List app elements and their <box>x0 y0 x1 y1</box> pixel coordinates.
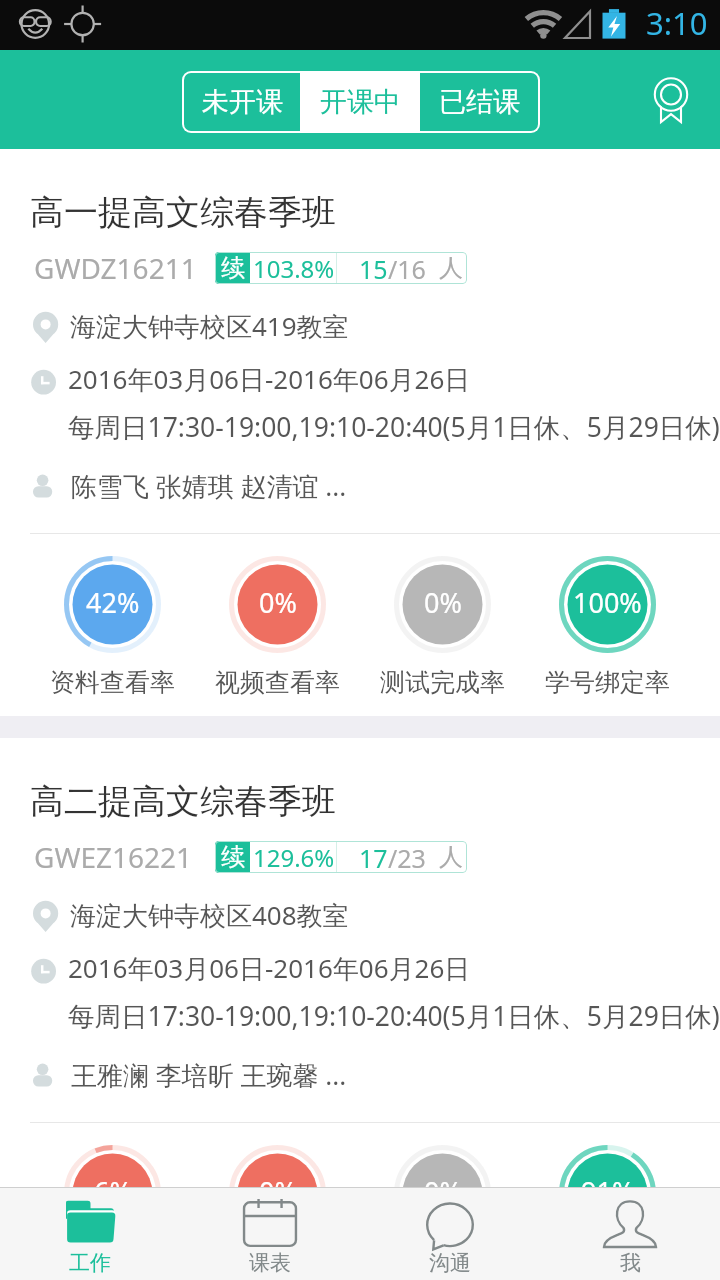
staticText: 视频查看率 <box>215 1256 340 1280</box>
staticText: 测试完成率 <box>380 1256 505 1280</box>
button[interactable]: 工作 <box>0 1188 180 1280</box>
staticText: 陈雪飞 张婧琪 赵清谊 ... <box>71 468 347 504</box>
staticText: 15 <box>359 252 388 284</box>
staticText: 未开课 <box>202 85 283 119</box>
staticText: 0% <box>424 1173 462 1210</box>
staticText: 学号绑定率 <box>545 667 670 698</box>
staticText: 42% <box>86 584 140 621</box>
staticText: GWDZ16211 <box>34 249 197 287</box>
staticText: 每周日17:30-19:00,19:10-20:40(5月1日休、5月29日休) <box>68 998 720 1034</box>
staticText: 2016年03月06日-2016年06月26日 <box>68 361 471 397</box>
staticText: 视频查看率 <box>215 667 340 698</box>
staticText: 3:10 <box>646 2 708 44</box>
staticText: 高二提高文综春季班 <box>30 780 336 823</box>
staticText: 17 <box>359 841 388 873</box>
button[interactable]: 已结课 <box>420 73 538 131</box>
staticText: 学号绑定率 <box>545 1256 670 1280</box>
staticText: 已结课 <box>439 85 520 119</box>
staticText: 0% <box>259 1173 297 1210</box>
staticText: 103.8% <box>253 252 335 284</box>
staticText: 资料查看率 <box>50 667 175 698</box>
staticText: 海淀大钟寺校区419教室 <box>70 308 349 344</box>
button[interactable]: 沟通 <box>360 1188 540 1280</box>
button[interactable]: 我 <box>540 1188 720 1280</box>
staticText: 工作 <box>69 1250 111 1276</box>
staticText: 2016年03月06日-2016年06月26日 <box>68 950 471 986</box>
staticText: 资料查看率 <box>50 1256 175 1280</box>
button[interactable]: Honors <box>645 68 697 120</box>
staticText: 续 <box>221 253 245 283</box>
staticText: 测试完成率 <box>380 667 505 698</box>
staticText: 6% <box>94 1173 132 1210</box>
staticText: 每周日17:30-19:00,19:10-20:40(5月1日休、5月29日休) <box>68 409 720 445</box>
staticText: 续 <box>221 842 245 872</box>
staticText: 0% <box>424 584 462 621</box>
staticText: 海淀大钟寺校区408教室 <box>70 897 349 933</box>
staticText: 0% <box>259 584 297 621</box>
staticText: 100% <box>573 584 642 621</box>
staticText: 人 <box>439 253 463 283</box>
staticText: 高一提高文综春季班 <box>30 191 336 234</box>
button[interactable]: 开课中 <box>300 73 420 131</box>
staticText: 沟通 <box>429 1250 471 1276</box>
button[interactable]: 课表 <box>180 1188 360 1280</box>
staticText: /23 <box>388 841 426 873</box>
staticText: 课表 <box>249 1250 291 1276</box>
button[interactable]: 未开课 <box>184 73 300 131</box>
staticText: /16 <box>388 252 426 284</box>
staticText: 开课中 <box>320 85 401 119</box>
staticText: 我 <box>620 1250 641 1276</box>
staticText: GWEZ16221 <box>34 838 193 876</box>
staticText: 91% <box>581 1173 635 1210</box>
staticText: 129.6% <box>253 841 335 873</box>
staticText: 王雅澜 李培昕 王琬馨 ... <box>71 1057 347 1093</box>
staticText: 人 <box>439 842 463 872</box>
